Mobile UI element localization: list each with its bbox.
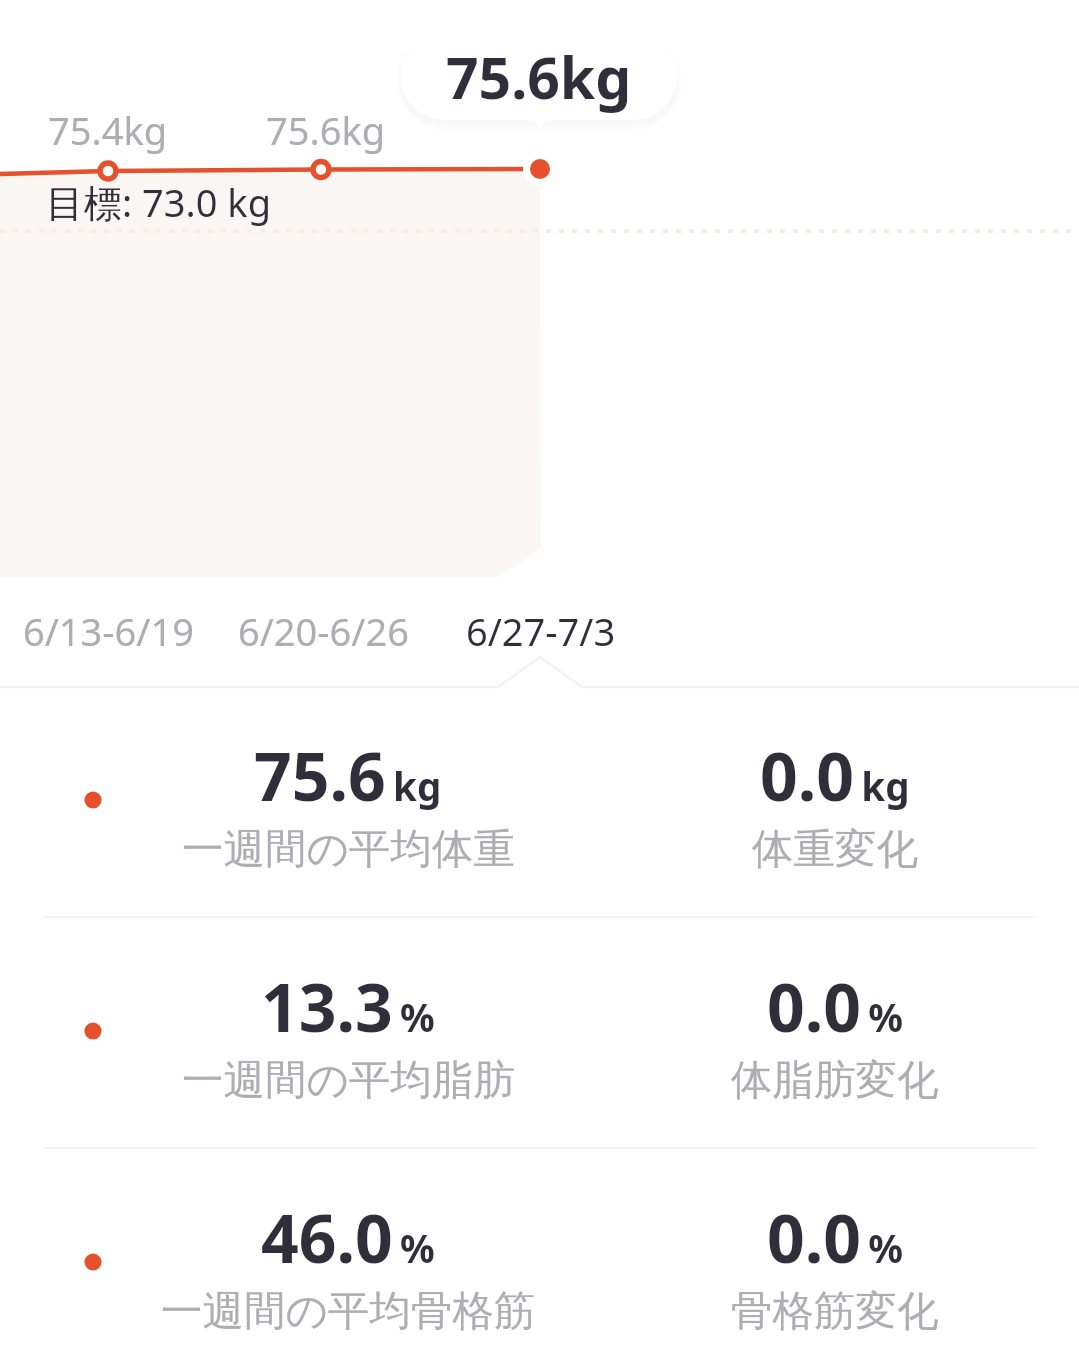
button[interactable]: 46.0 %: [0, 1149, 1079, 1351]
staticText: 75.6kg: [266, 104, 386, 156]
staticText: 一週間の平均骨格筋: [161, 1285, 536, 1337]
staticText: 体重変化: [752, 823, 918, 875]
staticText: 6/20-6/26: [238, 605, 409, 657]
staticText: 13.3 %: [261, 961, 435, 1051]
staticText: 0.0 %: [767, 1192, 904, 1282]
staticText: 一週間の平均体重: [182, 823, 515, 875]
staticText: 6/13-6/19: [23, 605, 194, 657]
staticText: 75.6 kg: [254, 730, 442, 820]
staticText: 体脂肪変化: [731, 1054, 939, 1106]
staticText: 0.0 %: [767, 961, 904, 1051]
button[interactable]: 75.6 kg: [0, 687, 1079, 916]
staticText: 46.0 %: [261, 1192, 435, 1282]
staticText: 骨格筋変化: [731, 1285, 939, 1337]
staticText: 一週間の平均脂肪: [182, 1054, 515, 1106]
staticText: 75.6kg: [446, 38, 632, 116]
button[interactable]: 75.6kg: [401, 33, 677, 120]
button[interactable]: 6/27-7/3: [462, 597, 620, 665]
button[interactable]: 6/20-6/26: [234, 597, 413, 665]
staticText: 6/27-7/3: [466, 605, 616, 657]
staticText: 目標: 73.0 kg: [46, 176, 271, 228]
other: Weekly weight trend chart: [0, 0, 1079, 687]
staticText: 0.0 kg: [760, 730, 910, 820]
button[interactable]: 6/13-6/19: [19, 597, 198, 665]
staticText: 75.4kg: [48, 104, 168, 156]
button[interactable]: 13.3 %: [0, 918, 1079, 1147]
